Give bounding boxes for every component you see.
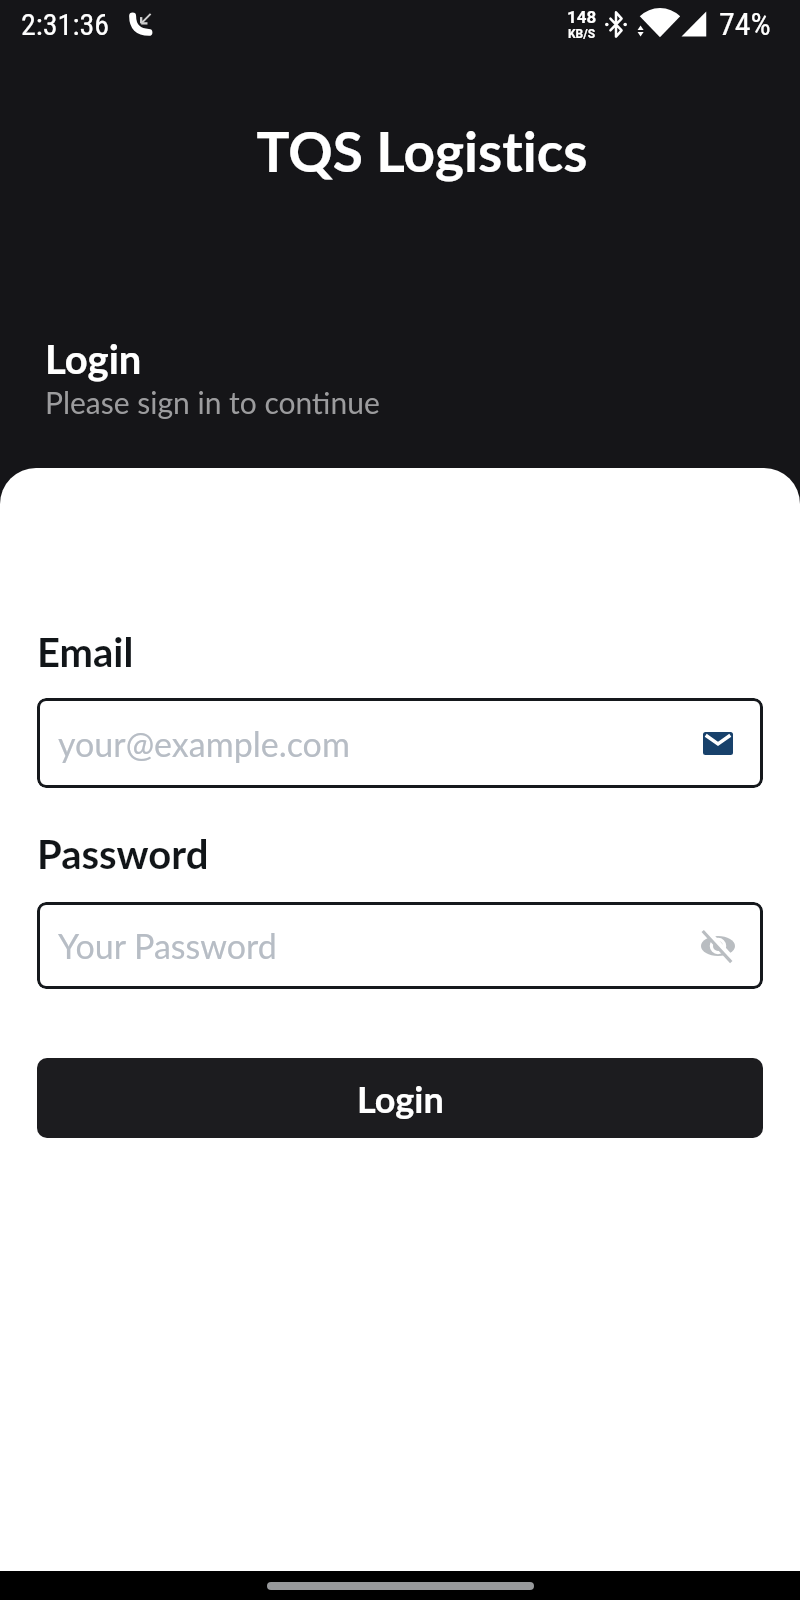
staticText: 148 (567, 7, 597, 27)
staticText: TQS Logistics (22, 118, 800, 184)
button[interactable]: your@example.com (37, 698, 763, 788)
staticText: Login (45, 335, 142, 383)
staticText: Password (37, 830, 209, 878)
staticText: Login (357, 1077, 444, 1120)
staticText: 2:31:36 (21, 7, 110, 42)
button[interactable]: Your Password (37, 902, 763, 989)
staticText: Your Password (58, 925, 277, 966)
staticText: Email (37, 628, 134, 676)
button[interactable]: Login (37, 1058, 763, 1138)
staticText: your@example.com (58, 723, 350, 764)
staticText: 74% (719, 5, 771, 43)
staticText: KB/S (568, 27, 596, 41)
staticText: Please sign in to continue (45, 384, 380, 420)
